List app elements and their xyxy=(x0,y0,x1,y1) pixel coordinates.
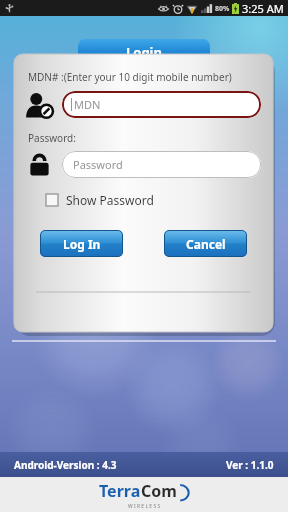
staticText: Cancel xyxy=(186,236,226,252)
staticText: Login xyxy=(126,43,162,61)
button[interactable]: Password xyxy=(62,151,261,178)
staticText: MDN xyxy=(74,97,101,112)
staticText: Password xyxy=(73,157,123,172)
staticText: Ver : 1.1.0 xyxy=(226,458,274,472)
staticText: Terra xyxy=(99,480,141,502)
staticText: 3:25 AM xyxy=(242,1,284,16)
staticText: Password: xyxy=(28,131,76,145)
button[interactable]: Cancel xyxy=(164,230,247,257)
staticText: Log In xyxy=(63,236,101,252)
staticText: Show Password xyxy=(66,192,154,208)
other: Password xyxy=(30,154,49,176)
button[interactable]: Show Password xyxy=(44,190,156,210)
staticText: 80% xyxy=(215,4,230,14)
staticText: Com xyxy=(141,480,177,502)
staticText: Android-Version : 4.3 xyxy=(14,458,117,472)
button[interactable]: MDN xyxy=(62,91,261,118)
staticText: W I R E L E S S xyxy=(128,503,161,510)
other: User xyxy=(22,92,56,118)
staticText: MDN# :(Enter your 10 digit mobile number… xyxy=(28,70,232,84)
button[interactable]: Log In xyxy=(40,230,123,257)
button[interactable]: Login xyxy=(78,39,210,64)
